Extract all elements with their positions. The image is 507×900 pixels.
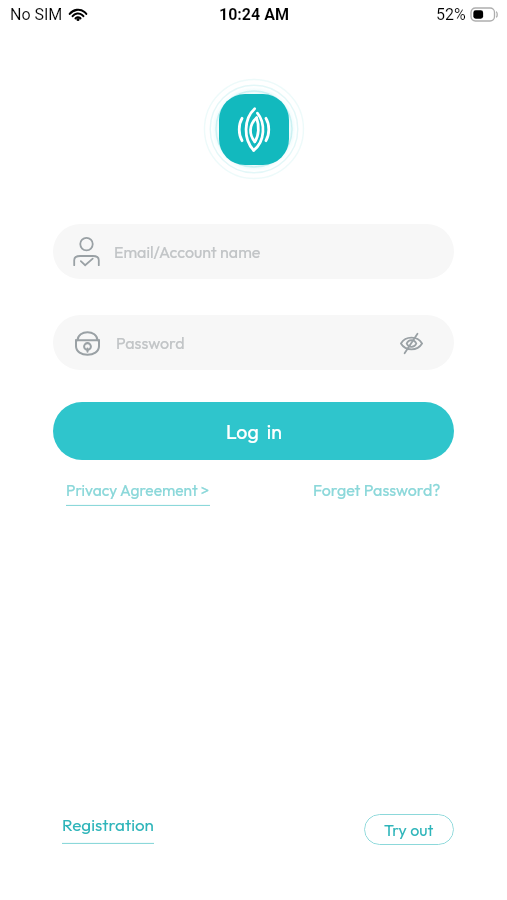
button[interactable]: Log in <box>53 402 454 460</box>
staticText: Password <box>116 333 185 353</box>
staticText: Try out <box>384 820 434 840</box>
staticText: No SIM <box>10 5 63 24</box>
button[interactable]: Password <box>53 315 454 370</box>
button[interactable]: Privacy Agreement > <box>66 480 210 506</box>
staticText: 10:24 AM <box>219 5 289 24</box>
button[interactable]: Email/Account name <box>53 224 454 279</box>
button[interactable]: Try out <box>364 814 454 845</box>
staticText: Registration <box>62 814 154 835</box>
staticText: Log in <box>226 419 282 444</box>
button[interactable]: Forget Password? <box>313 480 441 506</box>
staticText: Email/Account name <box>114 242 261 262</box>
button[interactable]: Registration <box>62 814 154 844</box>
staticText: 52% <box>436 5 466 24</box>
button[interactable]: Show password <box>392 323 431 363</box>
staticText: Forget Password? <box>313 480 441 500</box>
staticText: Privacy Agreement > <box>66 480 210 500</box>
